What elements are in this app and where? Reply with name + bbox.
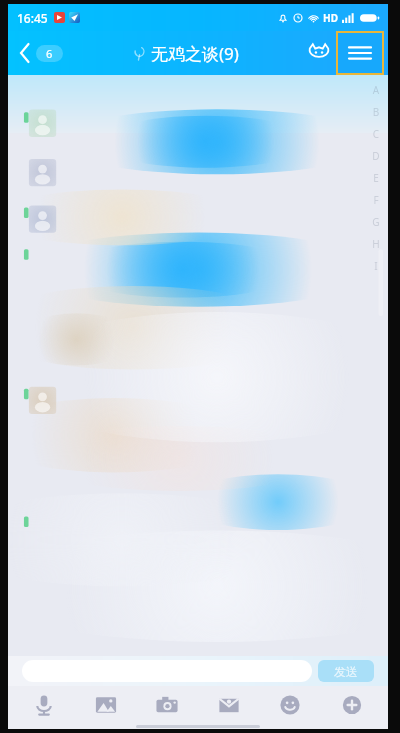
staticText: I [369, 259, 383, 273]
staticText: 无鸡之谈(9) [151, 42, 239, 65]
button[interactable]: Gallery [81, 686, 131, 724]
staticText: G [369, 215, 383, 229]
button[interactable]: Back [8, 31, 71, 75]
button[interactable]: Group face [302, 31, 336, 75]
staticText: 16:45 [17, 10, 48, 26]
staticText: 发送 [334, 664, 358, 679]
staticText: 6 [46, 46, 53, 61]
button[interactable]: Voice message [19, 686, 69, 724]
staticText: E [369, 171, 383, 185]
staticText: B [369, 105, 383, 119]
staticText: A [369, 83, 383, 97]
button[interactable]: Envelope [204, 686, 254, 724]
button[interactable]: Emoji [265, 686, 315, 724]
button[interactable]: 发送 [318, 660, 374, 682]
staticText: F [369, 193, 383, 207]
staticText: HD [323, 11, 338, 25]
button[interactable]: Menu [338, 33, 382, 73]
staticText: H [369, 237, 383, 251]
button[interactable]: Camera [142, 686, 192, 724]
staticText: D [369, 149, 383, 163]
staticText: C [369, 127, 383, 141]
button[interactable]: More [327, 686, 377, 724]
